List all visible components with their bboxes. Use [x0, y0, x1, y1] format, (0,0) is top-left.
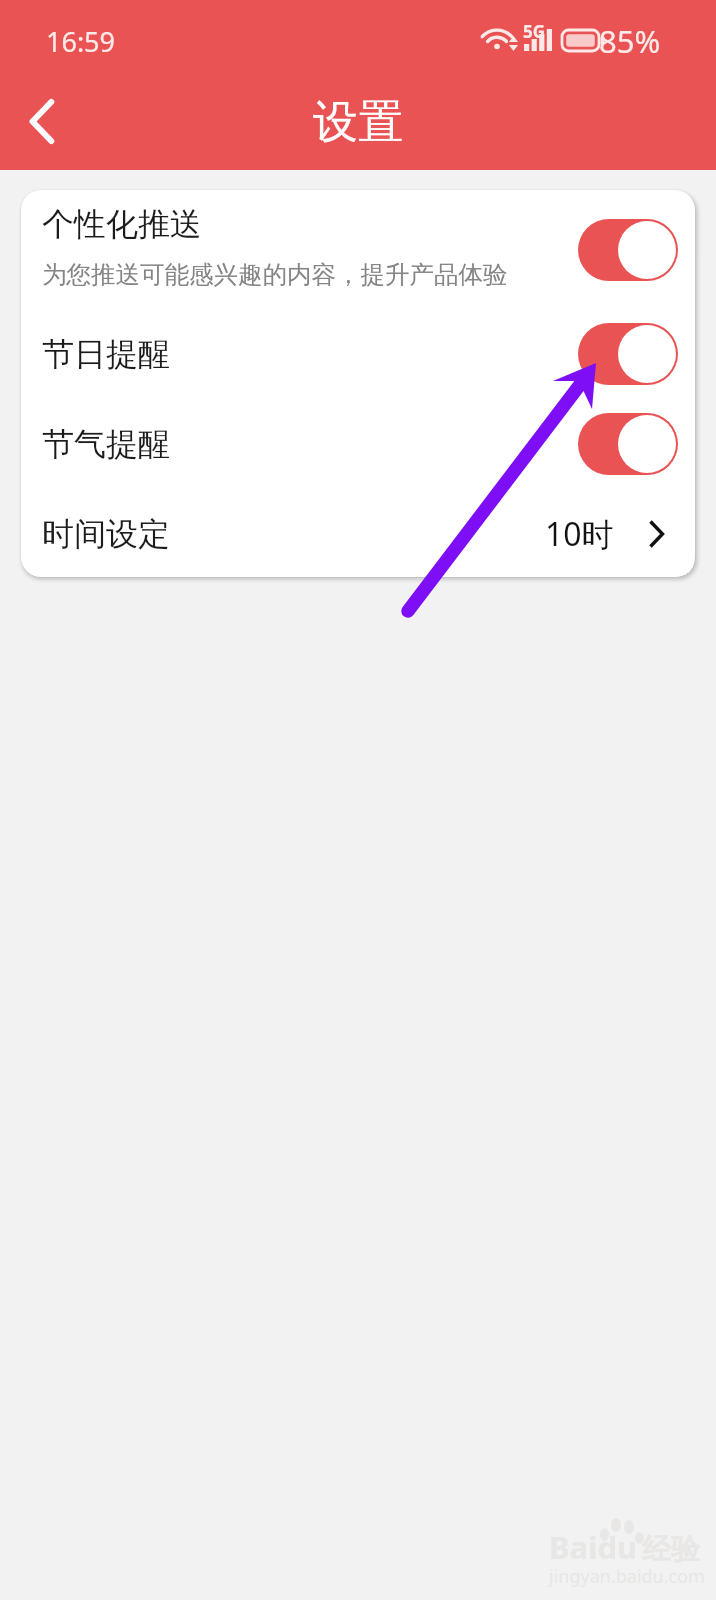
staticText: 个性化推送	[42, 204, 202, 244]
staticText: 85%	[599, 20, 661, 62]
staticText: 为您推送可能感兴趣的内容，提升产品体验	[42, 259, 508, 290]
staticText: 16:59	[46, 23, 116, 60]
button[interactable]: 时间设定	[21, 490, 695, 577]
button[interactable]: Back	[6, 85, 78, 157]
staticText: 经验	[642, 1531, 700, 1568]
staticText: 5G	[523, 20, 546, 43]
staticText: jingyan.baidu.com	[549, 1564, 705, 1589]
staticText: 节气提醒	[42, 424, 578, 464]
staticText: 节日提醒	[42, 334, 578, 374]
button[interactable]: Toggle on	[578, 413, 678, 475]
button[interactable]: 节气提醒	[21, 398, 695, 490]
button[interactable]: 节日提醒	[21, 310, 695, 398]
button[interactable]: Toggle on	[578, 323, 678, 385]
staticText: Baidu	[549, 1526, 638, 1568]
button[interactable]: 个性化推送	[21, 190, 695, 310]
button[interactable]: Toggle on	[578, 219, 678, 281]
staticText: 设置	[313, 94, 403, 151]
staticText: 时间设定	[42, 514, 545, 554]
staticText: 10时	[545, 512, 614, 556]
